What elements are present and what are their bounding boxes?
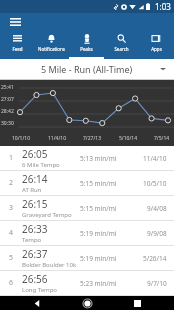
- button[interactable]: 2: [0, 171, 174, 195]
- button[interactable]: Peaks: [69, 30, 104, 59]
- staticText: 9/4/08: [147, 204, 167, 213]
- staticText: 7/27/13: [83, 135, 102, 142]
- staticText: 1: [9, 153, 14, 163]
- button[interactable]: Feed: [0, 30, 34, 59]
- staticText: 1:03: [155, 1, 171, 12]
- staticText: 5:15 min/mi: [80, 179, 143, 188]
- staticText: 5:15 min/mi: [80, 204, 147, 213]
- staticText: Long Tempo: [22, 286, 57, 294]
- staticText: 28:42: [1, 108, 14, 115]
- staticText: Bolder Boulder 10k: [22, 261, 77, 269]
- staticText: Feed: [12, 46, 23, 52]
- staticText: 9/7/10: [147, 279, 167, 288]
- staticText: 11/4/10: [48, 135, 67, 142]
- button[interactable]: Notifications: [34, 30, 69, 59]
- staticText: 2: [9, 178, 14, 188]
- staticText: 26:37: [22, 247, 48, 261]
- button[interactable]: 5: [0, 246, 174, 270]
- staticText: 6: [9, 278, 14, 288]
- button[interactable]: 3: [0, 196, 174, 220]
- staticText: 5:13 min/mi: [80, 154, 143, 163]
- button[interactable]: Apps: [139, 30, 174, 59]
- staticText: 5/26/14: [143, 254, 167, 263]
- staticText: 5:19 min/mi: [80, 254, 143, 263]
- button[interactable]: Back: [24, 296, 50, 310]
- button[interactable]: Home: [74, 296, 100, 310]
- button[interactable]: 1: [0, 146, 174, 170]
- button[interactable]: 4: [0, 221, 174, 245]
- staticText: 5 Mile - Run (All-Time): [41, 63, 133, 75]
- staticText: Search: [114, 46, 129, 52]
- staticText: 5:23 min/mi: [80, 279, 147, 288]
- staticText: 11/4/10: [143, 154, 167, 163]
- button[interactable]: Search: [104, 30, 139, 59]
- staticText: 26:15: [22, 197, 48, 211]
- staticText: 4: [9, 228, 14, 238]
- staticText: 26:33: [22, 222, 48, 236]
- staticText: 10/1/10: [12, 135, 31, 142]
- staticText: 26:05: [22, 147, 48, 161]
- staticText: Apps: [151, 46, 162, 52]
- staticText: Tempo: [22, 236, 42, 244]
- staticText: 26:14: [22, 172, 48, 186]
- button[interactable]: Recent apps: [124, 296, 150, 310]
- button[interactable]: Open navigation menu: [6, 13, 24, 30]
- staticText: AT Run: [22, 186, 42, 194]
- staticText: 9/9/08: [147, 229, 167, 238]
- staticText: Notifications: [38, 46, 65, 52]
- staticText: 25:41: [1, 84, 14, 91]
- staticText: 30:30: [1, 120, 14, 127]
- staticText: 3: [9, 203, 14, 213]
- staticText: 10/5/10: [143, 179, 167, 188]
- staticText: 5:19 min/mi: [80, 229, 147, 238]
- staticText: 7/5/14: [154, 135, 170, 142]
- staticText: 27:07: [1, 96, 14, 103]
- button[interactable]: 5 Mile - Run (All-Time): [0, 59, 174, 79]
- staticText: Graveyard Tempo: [22, 211, 72, 219]
- button[interactable]: 6: [0, 271, 174, 295]
- staticText: 6 Mile Tempo: [22, 161, 60, 169]
- staticText: 5/10/14: [119, 135, 138, 142]
- staticText: 26:56: [22, 272, 48, 286]
- staticText: Peaks: [80, 46, 93, 52]
- staticText: 5: [9, 253, 14, 263]
